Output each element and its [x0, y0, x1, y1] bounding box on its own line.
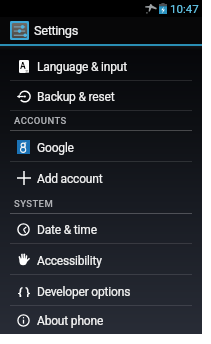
- button[interactable]: Accessibility: [0, 244, 202, 275]
- staticText: Developer options: [37, 285, 131, 299]
- staticText: Backup & reset: [37, 90, 115, 104]
- staticText: Accessibility: [37, 254, 102, 268]
- button[interactable]: Date & time: [0, 214, 202, 244]
- button[interactable]: Google: [0, 131, 202, 162]
- button[interactable]: About phone: [0, 306, 202, 334]
- button[interactable]: Backup & reset: [0, 81, 202, 111]
- button[interactable]: Add account: [0, 162, 202, 193]
- staticText: About phone: [37, 314, 104, 328]
- staticText: ACCOUNTS: [14, 115, 67, 126]
- button[interactable]: A: [0, 51, 202, 81]
- staticText: SYSTEM: [14, 198, 54, 209]
- staticText: Settings: [34, 23, 78, 38]
- button[interactable]: { }: [0, 275, 202, 306]
- staticText: Language & input: [37, 60, 127, 74]
- staticText: Date & time: [37, 223, 97, 237]
- staticText: A: [20, 61, 26, 71]
- staticText: Add account: [37, 172, 103, 186]
- staticText: { }: [18, 284, 30, 297]
- button[interactable]: Settings: [0, 17, 202, 44]
- staticText: 10:47: [170, 2, 199, 15]
- staticText: Google: [37, 141, 74, 155]
